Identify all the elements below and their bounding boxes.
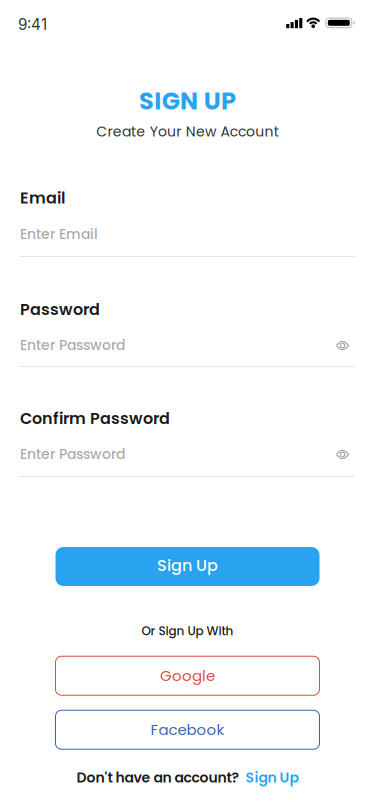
staticText: Enter Email xyxy=(20,224,98,244)
staticText: Sign Up xyxy=(245,768,298,787)
staticText: Create Your New Account xyxy=(96,122,279,141)
staticText: Don't have an account? xyxy=(76,768,239,787)
staticText: Password xyxy=(20,298,100,321)
staticText: Confirm Password xyxy=(20,407,170,430)
button[interactable]: Sign Up xyxy=(245,768,298,787)
staticText: Enter Password xyxy=(20,444,125,464)
staticText: Sign Up xyxy=(157,554,218,577)
staticText: Or Sign Up With xyxy=(141,623,233,639)
staticText: SIGN UP xyxy=(139,84,236,118)
button[interactable]: Google xyxy=(55,656,319,695)
staticText: Google xyxy=(160,665,215,686)
staticText: Enter Password xyxy=(20,335,125,355)
button[interactable]: Facebook xyxy=(55,710,319,749)
button[interactable] xyxy=(336,340,349,351)
button[interactable] xyxy=(336,449,349,460)
button[interactable]: Sign Up xyxy=(55,547,319,586)
staticText: 9:41 xyxy=(18,15,47,34)
staticText: Email xyxy=(20,187,65,209)
staticText: Facebook xyxy=(150,719,224,740)
